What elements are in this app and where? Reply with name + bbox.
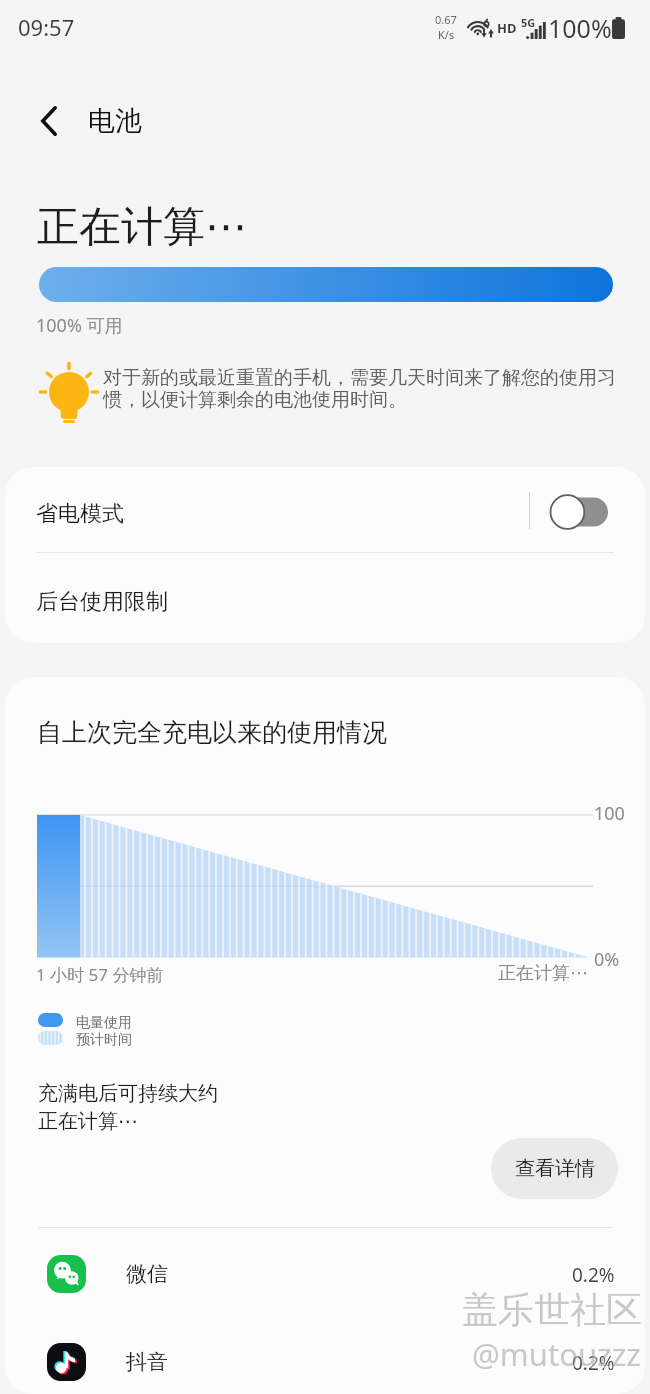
- staticText: 5G: [521, 15, 536, 30]
- staticText: 正在计算⋯: [498, 962, 588, 985]
- staticText: 预计时间: [76, 1031, 132, 1049]
- button[interactable]: 后台使用限制: [5, 553, 645, 643]
- staticText: 微信: [126, 1261, 168, 1287]
- button[interactable]: 省电模式: [5, 467, 645, 552]
- staticText: 自上次完全充电以来的使用情况: [37, 717, 387, 748]
- staticText: 充满电后可持续大约 正在计算⋯: [38, 1081, 218, 1134]
- staticText: 100% 可用: [36, 313, 123, 338]
- staticText: 盖乐世社区: [462, 1287, 642, 1332]
- staticText: 0.2%: [572, 1350, 615, 1376]
- staticText: 抖音: [126, 1349, 168, 1375]
- staticText: 0.67: [435, 12, 457, 27]
- staticText: @mutouzzz: [474, 1335, 643, 1377]
- staticText: 查看详情: [515, 1156, 595, 1181]
- staticText: 100%: [548, 11, 612, 45]
- staticText: 正在计算⋯: [37, 201, 247, 254]
- staticText: 电池: [88, 104, 142, 138]
- button[interactable]: 查看详情: [491, 1138, 618, 1199]
- staticText: 100: [594, 801, 625, 826]
- staticText: 电量使用: [76, 1014, 132, 1032]
- staticText: @mutouzzz: [472, 1333, 641, 1375]
- staticText: 对于新的或最近重置的手机，需要几天时间来了解您的使用习惯，以便计算剩余的电池使用…: [103, 366, 621, 411]
- button[interactable]: 抖音: [5, 1319, 645, 1394]
- button[interactable]: Back: [16, 95, 82, 147]
- staticText: 省电模式: [36, 500, 124, 528]
- button[interactable]: 微信: [5, 1231, 645, 1319]
- staticText: 盖乐世社区: [464, 1289, 644, 1334]
- staticText: 后台使用限制: [36, 588, 168, 616]
- staticText: 0%: [594, 947, 620, 972]
- staticText: HD: [497, 19, 517, 37]
- staticText: 0.2%: [572, 1262, 615, 1288]
- staticText: K/s: [438, 27, 455, 42]
- button[interactable]: Power saving mode toggle: [546, 492, 610, 532]
- staticText: 09:57: [18, 12, 75, 42]
- staticText: 1 小时 57 分钟前: [36, 963, 164, 986]
